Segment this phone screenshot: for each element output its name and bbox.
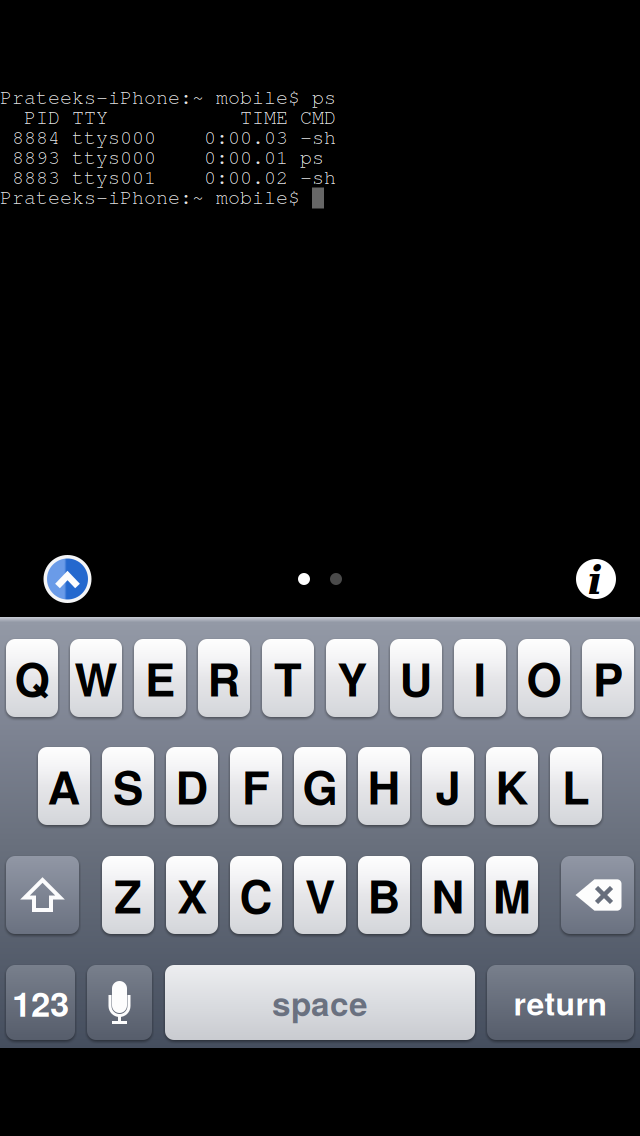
button[interactable]: M: [486, 856, 538, 934]
button[interactable]: S: [102, 747, 154, 825]
button[interactable]: I: [454, 639, 506, 717]
button[interactable]: B: [358, 856, 410, 934]
staticText: 8883 ttys001 0:00.02 -sh: [0, 165, 336, 189]
staticText: T: [274, 645, 302, 710]
button[interactable]: G: [294, 747, 346, 825]
staticText: C: [239, 862, 272, 927]
staticText: Prateeks-iPhone:~ mobile$: [0, 185, 300, 209]
button[interactable]: space: [165, 965, 475, 1040]
button[interactable]: E: [134, 639, 186, 717]
button[interactable]: T: [262, 639, 314, 717]
button[interactable]: J: [422, 747, 474, 825]
staticText: return: [513, 980, 607, 1025]
button[interactable]: D: [166, 747, 218, 825]
staticText: X: [177, 862, 207, 927]
staticText: 8893 ttys000 0:00.01 ps: [0, 145, 324, 169]
staticText: R: [207, 645, 240, 710]
staticText: PID TTY TIME CMD: [0, 105, 336, 129]
staticText: L: [562, 753, 590, 818]
button[interactable]: Y: [326, 639, 378, 717]
staticText: 123: [12, 978, 69, 1027]
staticText: Prateeks-iPhone:~ mobile$ ps: [0, 85, 336, 109]
button[interactable]: W: [70, 639, 122, 717]
staticText: 8884 ttys000 0:00.03 -sh: [0, 125, 336, 149]
button[interactable]: A: [38, 747, 90, 825]
staticText: G: [302, 753, 337, 818]
button[interactable]: 123: [6, 965, 75, 1040]
button[interactable]: F: [230, 747, 282, 825]
staticText: space: [272, 979, 368, 1026]
staticText: H: [367, 753, 400, 818]
staticText: E: [145, 645, 175, 710]
button[interactable]: R: [198, 639, 250, 717]
button[interactable]: Dictate: [87, 965, 152, 1040]
staticText: M: [493, 862, 531, 927]
button[interactable]: Q: [6, 639, 58, 717]
staticText: O: [526, 645, 561, 710]
button[interactable]: V: [294, 856, 346, 934]
staticText: i: [587, 556, 602, 603]
staticText: W: [74, 645, 117, 710]
button[interactable]: U: [390, 639, 442, 717]
staticText: Y: [337, 645, 367, 710]
staticText: Z: [114, 862, 142, 927]
staticText: S: [113, 753, 143, 818]
button[interactable]: return: [487, 965, 634, 1040]
staticText: I: [473, 645, 486, 710]
button[interactable]: N: [422, 856, 474, 934]
staticText: N: [431, 862, 464, 927]
staticText: J: [435, 753, 460, 818]
button[interactable]: K: [486, 747, 538, 825]
staticText: F: [242, 753, 270, 818]
staticText: V: [305, 862, 335, 927]
staticText: P: [593, 645, 623, 710]
button[interactable]: P: [582, 639, 634, 717]
button[interactable]: O: [518, 639, 570, 717]
button[interactable]: Z: [102, 856, 154, 934]
button[interactable]: C: [230, 856, 282, 934]
button[interactable]: Info: [568, 551, 624, 607]
staticText: K: [495, 753, 528, 818]
button[interactable]: Delete: [561, 856, 634, 934]
button[interactable]: Shift: [6, 856, 79, 934]
button[interactable]: Hide keyboard: [36, 548, 98, 610]
button[interactable]: L: [550, 747, 602, 825]
staticText: Q: [14, 645, 49, 710]
button[interactable]: X: [166, 856, 218, 934]
staticText: D: [175, 753, 208, 818]
staticText: A: [47, 753, 80, 818]
button[interactable]: H: [358, 747, 410, 825]
staticText: U: [399, 645, 432, 710]
staticText: B: [367, 862, 400, 927]
